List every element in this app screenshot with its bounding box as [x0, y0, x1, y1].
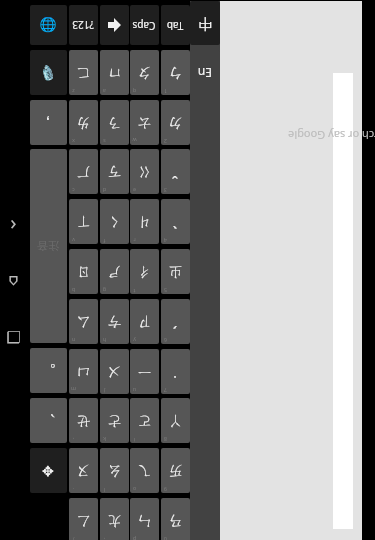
button[interactable]: Change keyboard — [30, 5, 67, 45]
staticText: z — [72, 88, 75, 95]
button[interactable]: ㄟ — [130, 448, 159, 493]
button[interactable]: ㄍ — [130, 149, 159, 194]
button[interactable]: ㄝ — [69, 398, 98, 443]
button[interactable]: Caps lock — [130, 5, 159, 45]
staticText: 🌐 — [39, 17, 57, 33]
button[interactable]: ㄈ — [69, 50, 98, 95]
staticText: 4 — [163, 236, 167, 243]
button[interactable]: ㄋ — [100, 100, 129, 145]
staticText: h — [102, 336, 106, 343]
staticText: ❐ — [6, 327, 21, 346]
button[interactable]: Numbers and symbols — [69, 5, 98, 45]
button[interactable]: Arrow keys — [30, 448, 67, 493]
button[interactable]: ㄅ — [161, 50, 190, 95]
staticText: n — [71, 336, 75, 343]
button[interactable]: ㄘ — [100, 299, 129, 344]
staticText: . — [72, 486, 74, 493]
button[interactable]: ㄣ — [130, 498, 159, 540]
staticText: ‹ — [10, 213, 17, 240]
staticText: k — [103, 436, 106, 443]
staticText: i — [133, 436, 135, 443]
button[interactable]: ㄉ — [161, 100, 190, 145]
staticText: 0 — [163, 535, 167, 540]
button[interactable]: Voice input — [30, 50, 67, 95]
staticText: e — [132, 186, 136, 193]
button[interactable]: ㄗ — [130, 299, 159, 344]
button[interactable]: ˋ — [161, 199, 190, 244]
button[interactable]: ㄎ — [100, 149, 129, 194]
staticText: ㄩ — [74, 361, 91, 381]
staticText: ; — [103, 536, 105, 540]
button[interactable]: ㄑ — [100, 199, 129, 244]
button[interactable]: Back — [0, 211, 27, 241]
button[interactable]: ㄕ — [100, 249, 129, 294]
staticText: ㄐ — [135, 211, 152, 231]
staticText: ㄤ — [105, 510, 122, 530]
button[interactable]: ㄇ — [100, 50, 129, 95]
button[interactable]: Shift — [100, 5, 129, 45]
button[interactable]: Period — [30, 348, 67, 393]
button[interactable]: ㄙ — [69, 299, 98, 344]
staticText: ㄅ — [166, 62, 183, 82]
button[interactable]: ㄠ — [100, 448, 129, 493]
button[interactable]: ㄜ — [100, 398, 129, 443]
staticText: ㄑ — [105, 211, 122, 231]
button[interactable]: ㄧ — [130, 349, 159, 394]
button[interactable]: ˊ — [161, 299, 190, 344]
button[interactable]: ㄔ — [130, 249, 159, 294]
button[interactable]: Recent apps — [0, 321, 27, 351]
staticText: ㄥ — [74, 510, 91, 530]
staticText: ㄈ — [74, 62, 91, 82]
staticText: , — [72, 436, 74, 443]
staticText: ㄛ — [135, 410, 152, 430]
staticText: 1 — [163, 87, 167, 94]
staticText: v — [72, 237, 75, 244]
button[interactable]: ㄨ — [100, 349, 129, 394]
button[interactable]: ˙ — [161, 349, 190, 394]
staticText: f — [103, 237, 105, 244]
staticText: q — [132, 87, 136, 94]
button[interactable]: ㄡ — [69, 448, 98, 493]
button[interactable]: ㄐ — [130, 199, 159, 244]
button[interactable]: ㄏ — [69, 149, 98, 194]
button[interactable]: Tab — [161, 5, 190, 45]
button[interactable]: ㄤ — [100, 498, 129, 540]
staticText: 7 — [163, 386, 167, 393]
staticText: m — [70, 385, 76, 392]
staticText: ㄖ — [74, 261, 91, 281]
button[interactable]: ㄖ — [69, 249, 98, 294]
button[interactable]: ㄢ — [161, 498, 190, 540]
button[interactable]: English input — [190, 50, 220, 95]
button[interactable]: ˇ — [161, 149, 190, 194]
button[interactable]: ㄥ — [69, 498, 98, 540]
staticText: ， — [40, 113, 56, 133]
button[interactable]: Punctuation — [30, 100, 67, 145]
staticText: ㄡ — [74, 460, 91, 480]
button[interactable]: ㄛ — [130, 398, 159, 443]
staticText: Caps — [132, 18, 155, 32]
button[interactable]: ㄩ — [69, 349, 98, 394]
staticText: ㄋ — [105, 112, 122, 132]
button[interactable]: ㄓ — [161, 249, 190, 294]
button[interactable]: ㄒ — [69, 199, 98, 244]
button[interactable]: ㄚ — [161, 398, 190, 443]
button[interactable]: Comma — [30, 398, 67, 443]
staticText: ㄧ — [135, 361, 152, 381]
staticText: ㄗ — [135, 311, 152, 331]
staticText: ?123 — [72, 18, 94, 32]
staticText: ✥ — [42, 463, 54, 479]
button[interactable]: Home — [0, 266, 27, 296]
staticText: En — [197, 64, 212, 80]
button[interactable]: ㄆ — [130, 50, 159, 95]
button[interactable]: ㄊ — [130, 100, 159, 145]
staticText: 2 — [163, 137, 167, 144]
button[interactable]: ㄞ — [161, 448, 190, 493]
staticText: Tab — [166, 18, 183, 32]
staticText: 6 — [163, 336, 167, 343]
staticText: ˇ — [171, 160, 178, 182]
staticText: t — [133, 287, 135, 294]
staticText: / — [72, 536, 75, 540]
button[interactable]: ㄌ — [69, 100, 98, 145]
button[interactable]: Chinese input — [190, 1, 220, 45]
